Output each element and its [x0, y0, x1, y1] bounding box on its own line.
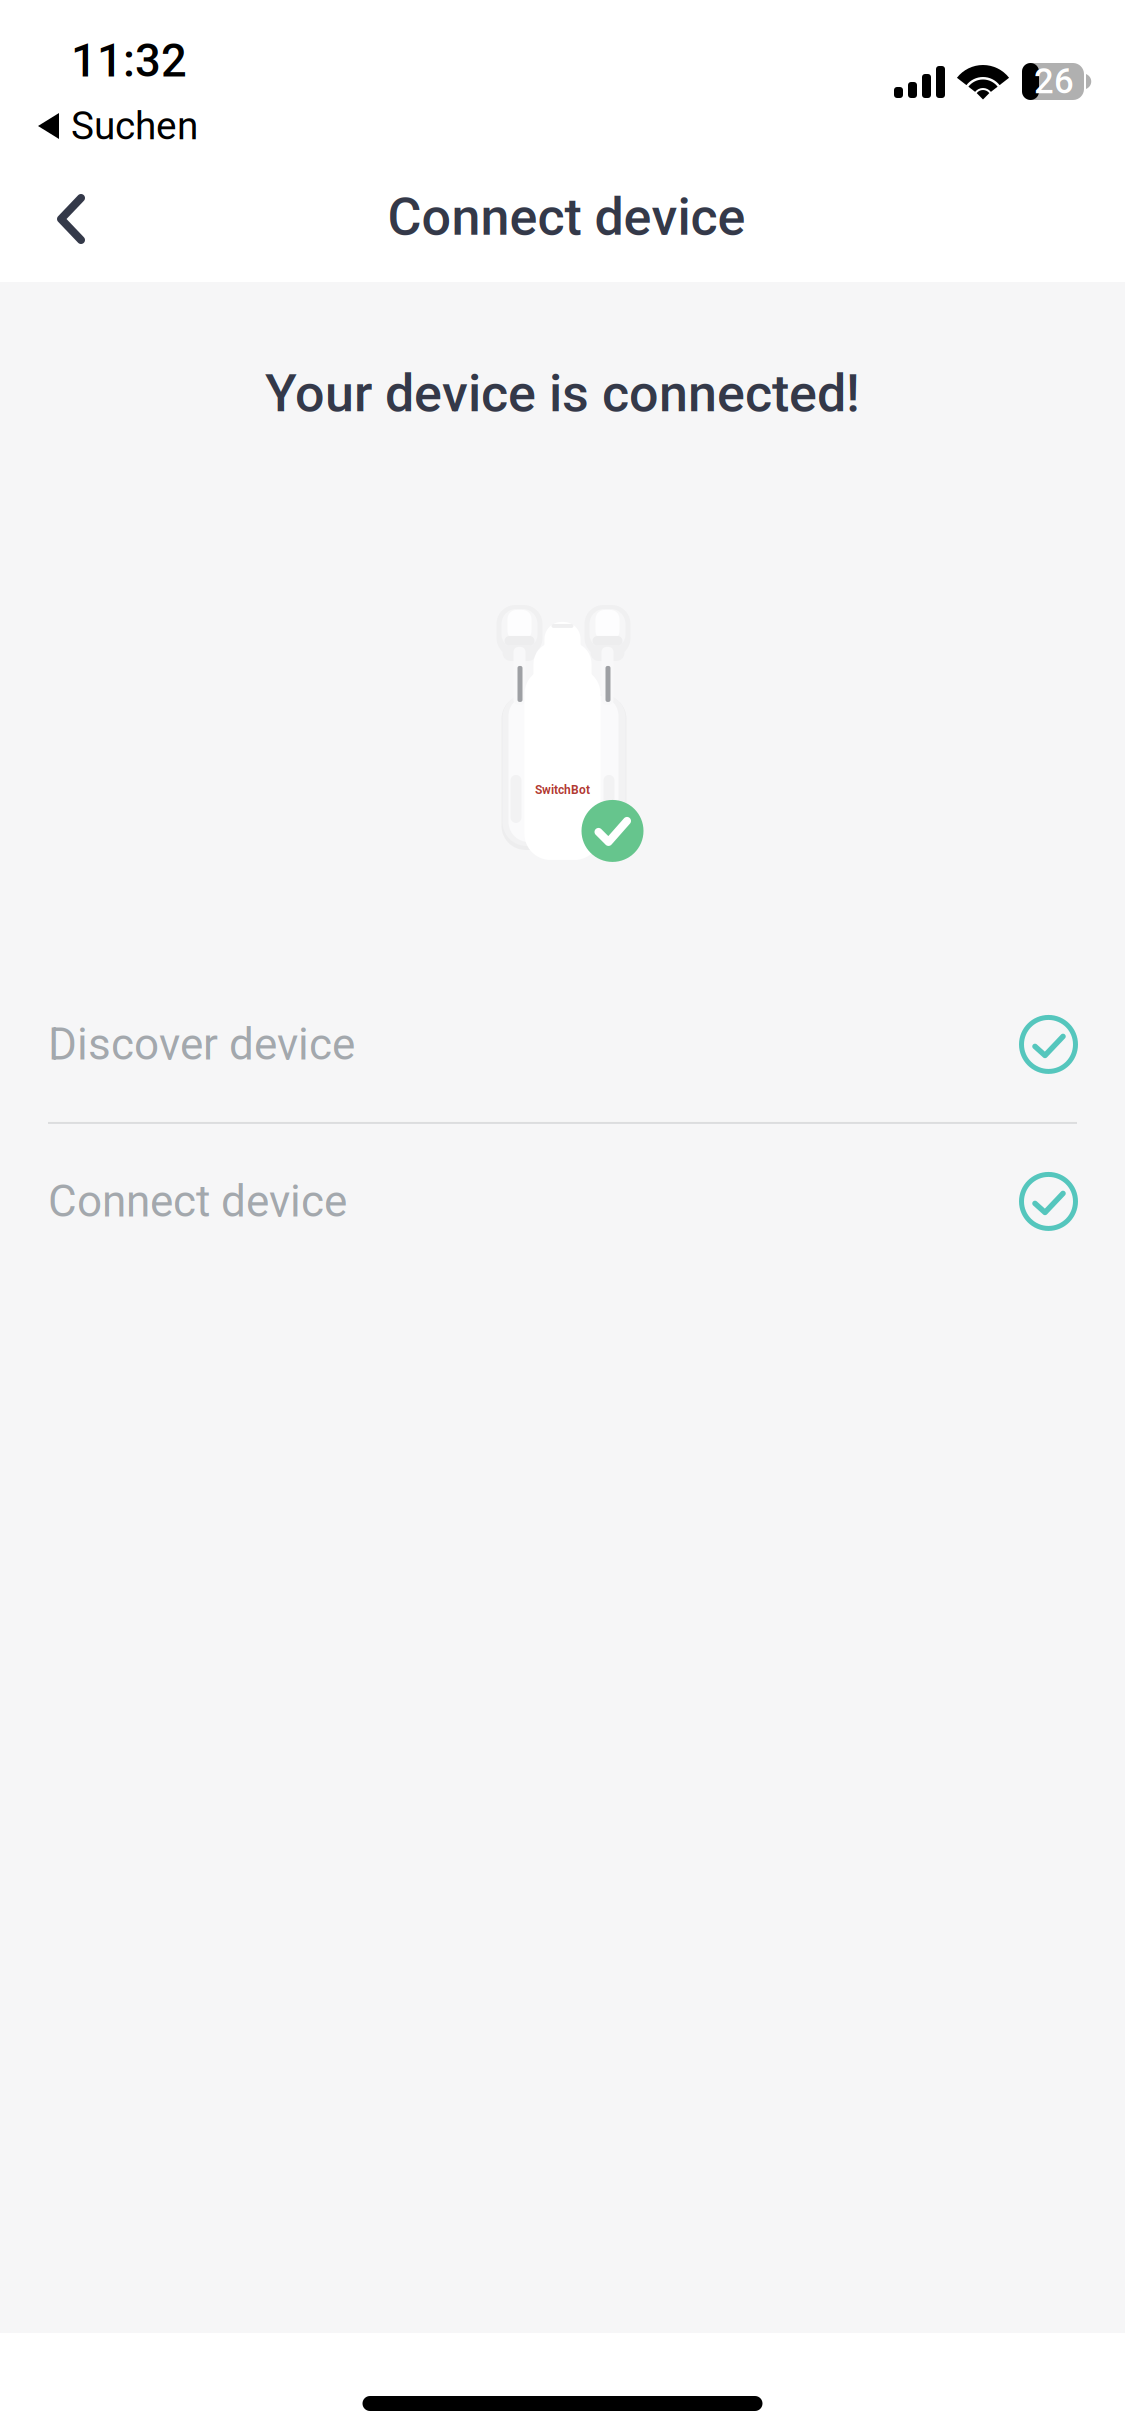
button[interactable]: Connect device: [0, 1124, 1125, 1279]
button[interactable]: Back: [19, 173, 123, 265]
staticText: 26: [1034, 61, 1074, 102]
staticText: Suchen: [71, 103, 198, 149]
staticText: Your device is connected!: [265, 363, 860, 424]
button[interactable]: Suchen: [38, 106, 298, 146]
staticText: Discover device: [48, 1019, 355, 1070]
staticText: Connect device: [48, 1176, 347, 1227]
button[interactable]: Discover device: [0, 967, 1125, 1122]
staticText: Connect device: [387, 186, 745, 247]
staticText: 11:32: [71, 34, 187, 87]
staticText: SwitchBot: [535, 783, 590, 797]
